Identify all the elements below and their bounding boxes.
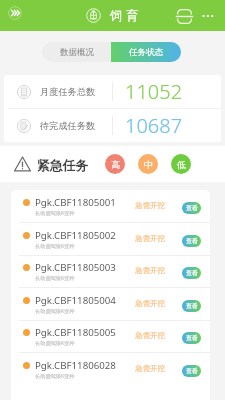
staticText: 11052	[125, 78, 183, 105]
staticText: 待完成任务数	[40, 120, 96, 132]
staticText: 月度任务总数	[40, 86, 96, 98]
staticText: Pgk.CBF11805005	[35, 326, 116, 339]
staticText: Pgk.CBF11805003	[35, 261, 116, 274]
staticText: 查看	[186, 204, 198, 212]
staticText: 长劲鹿驾狼K亚种	[35, 209, 75, 216]
button[interactable]: Expand menu	[3, 1, 27, 25]
staticText: 急需开挖	[135, 201, 165, 210]
button[interactable]: 查看	[182, 332, 201, 344]
staticText: Pgk.CBF11806028	[35, 359, 116, 372]
button[interactable]: 查看	[182, 365, 201, 377]
button[interactable]: 数据概况	[42, 42, 111, 62]
staticText: 高	[111, 159, 120, 170]
staticText: 查看	[186, 269, 198, 277]
button[interactable]: 任务状态	[111, 42, 181, 62]
button[interactable]: 查看	[182, 235, 201, 247]
staticText: Pgk.CBF11805001	[35, 196, 116, 209]
button[interactable]: Pgk.CBF11805001	[11, 190, 210, 223]
staticText: 急需开挖	[135, 234, 165, 243]
staticText: 长劲鹿驾狼K亚种	[35, 372, 75, 379]
button[interactable]: 高	[105, 154, 125, 174]
staticText: 查看	[186, 237, 198, 245]
staticText: Pgk.CBF11805002	[35, 229, 116, 242]
button[interactable]: Scan code	[172, 4, 196, 28]
staticText: 任务状态	[129, 47, 163, 58]
staticText: 长劲鹿驾狼K亚种	[35, 242, 75, 249]
staticText: 查看	[186, 367, 198, 375]
staticText: 急需开挖	[135, 364, 165, 373]
staticText: 查看	[186, 334, 198, 342]
staticText: Pgk.CBF11805004	[35, 294, 116, 307]
staticText: 急需开挖	[135, 299, 165, 308]
staticText: 长劲鹿驾狼K亚种	[35, 274, 75, 281]
staticText: 饲 育	[110, 7, 139, 24]
staticText: 长劲鹿驾狼K亚种	[35, 307, 75, 314]
staticText: 数据概况	[60, 47, 94, 58]
button[interactable]: 查看	[182, 202, 201, 214]
button[interactable]: Pgk.CBF11805003	[11, 255, 210, 288]
button[interactable]: Pgk.CBF11805004	[11, 288, 210, 321]
staticText: 紧急任务	[37, 158, 89, 174]
button[interactable]: Pgk.CBF11805002	[11, 223, 210, 256]
staticText: 长劲鹿驾狼K亚种	[35, 339, 75, 346]
button[interactable]: Pgk.CBF11805005	[11, 320, 210, 353]
staticText: 急需开挖	[135, 331, 165, 340]
staticText: 急需开挖	[135, 266, 165, 275]
button[interactable]: Pgk.CBF11806028	[11, 353, 210, 386]
staticText: 中	[144, 159, 153, 170]
button[interactable]: 查看	[182, 267, 201, 279]
staticText: 低	[177, 159, 186, 170]
button[interactable]: 低	[171, 154, 191, 174]
staticText: 查看	[186, 302, 198, 310]
staticText: 10687	[125, 112, 183, 139]
button[interactable]: 中	[138, 154, 158, 174]
button[interactable]: 查看	[182, 300, 201, 312]
button[interactable]: More options	[196, 4, 220, 28]
